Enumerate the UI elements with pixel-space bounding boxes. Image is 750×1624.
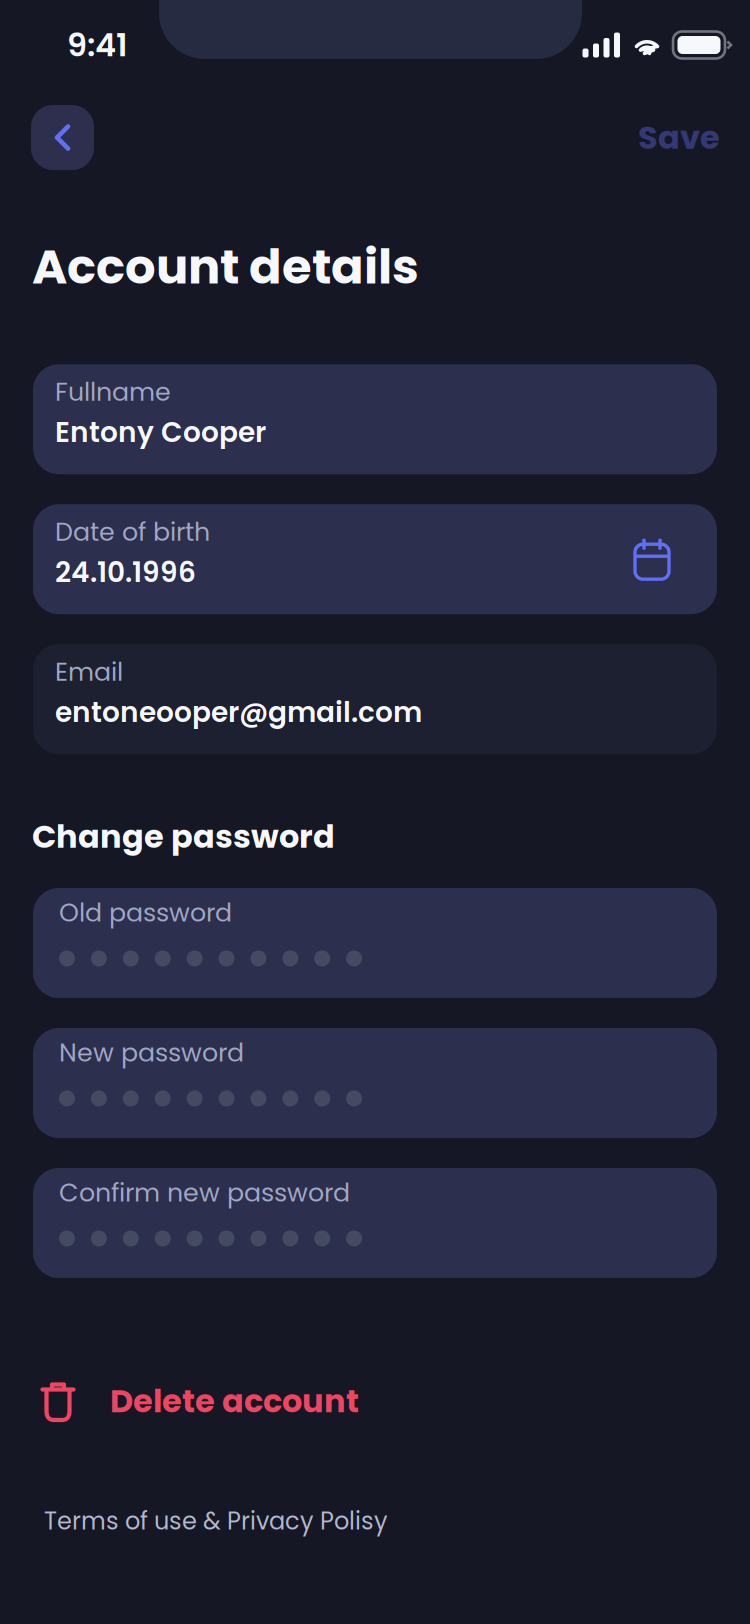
staticText: 9:41 [67,23,128,67]
staticText: Change password [32,814,335,859]
staticText: Account details [32,233,419,300]
button[interactable]: Terms of use & Privacy Polisy [0,1503,750,1539]
button[interactable]: Date of birth [33,504,717,614]
staticText: Fullname [55,374,171,410]
staticText: New password [59,1035,244,1070]
button[interactable]: Fullname [33,364,717,474]
button[interactable]: Confirm new password [33,1168,717,1278]
staticText: 24.10.1996 [55,553,196,592]
staticText: entoneooper@gmail.com [55,693,422,732]
staticText: Entony Cooper [55,413,266,452]
button[interactable]: Old password [33,888,717,998]
staticText: Save [638,115,720,160]
staticText: Confirm new password [59,1175,350,1210]
staticText: Terms of use & Privacy Polisy [44,1504,388,1538]
button[interactable]: Back [31,105,94,170]
button[interactable]: Delete account [0,1376,750,1426]
staticText: Email [55,654,123,690]
staticText: Date of birth [55,514,210,550]
staticText: Old password [59,895,232,930]
button[interactable]: Email [33,644,717,754]
staticText: Delete account [110,1379,359,1423]
button[interactable]: New password [33,1028,717,1138]
button[interactable]: Save [638,105,720,170]
